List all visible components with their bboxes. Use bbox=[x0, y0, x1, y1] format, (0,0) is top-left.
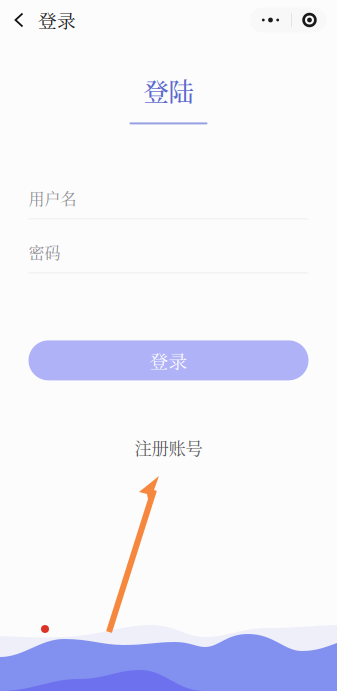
button[interactable]: Close bbox=[292, 7, 327, 32]
staticText: 登陆 bbox=[143, 72, 193, 108]
button[interactable]: Back bbox=[0, 0, 38, 40]
button[interactable]: More bbox=[250, 7, 291, 32]
button[interactable]: 注册账号 bbox=[108, 434, 228, 460]
staticText: 用户名 bbox=[28, 186, 76, 209]
staticText: 登录 bbox=[149, 347, 187, 374]
button[interactable]: 登录 bbox=[28, 340, 308, 380]
staticText: 登录 bbox=[38, 7, 76, 33]
staticText: 密码 bbox=[28, 240, 60, 263]
staticText: 注册账号 bbox=[134, 435, 202, 460]
